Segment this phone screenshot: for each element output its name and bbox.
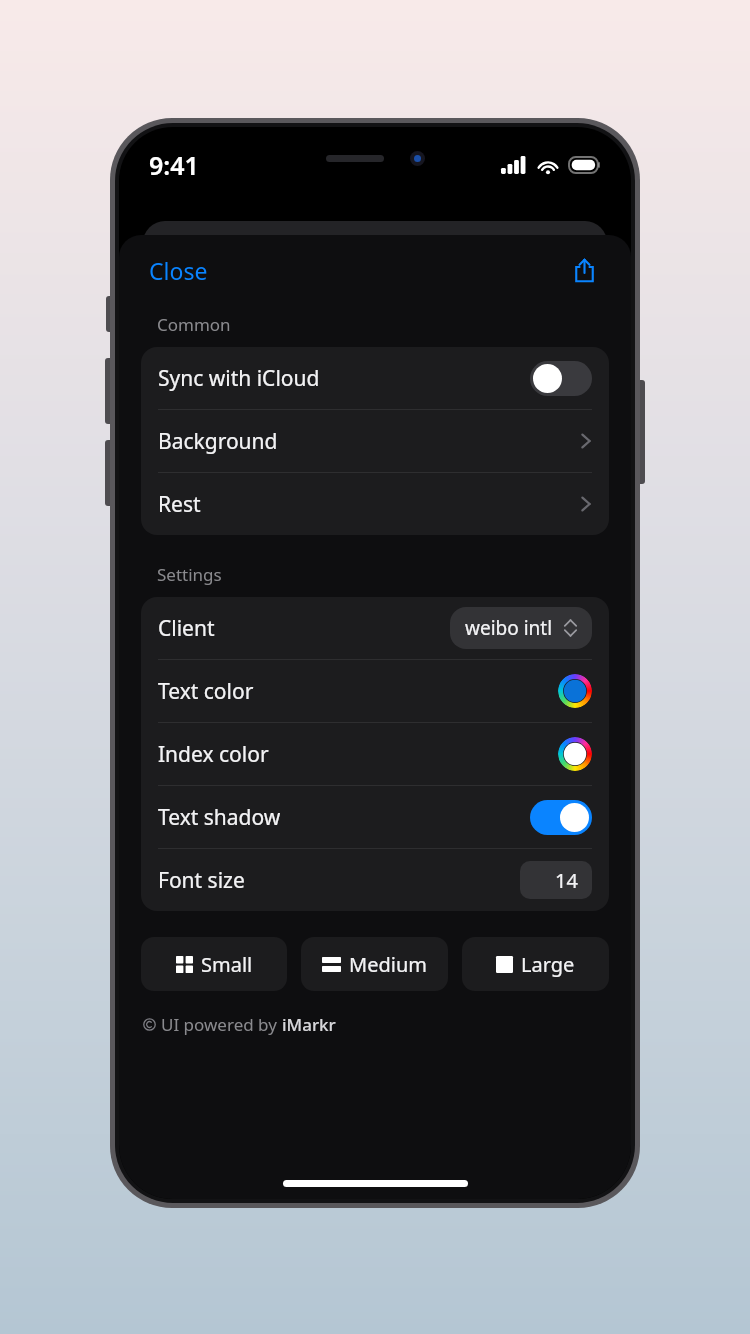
button[interactable]: Text color (141, 660, 609, 722)
staticText: 9:41 (149, 148, 199, 182)
staticText: Medium (349, 951, 427, 978)
staticText: UI powered by (161, 1013, 282, 1036)
staticText: Index color (158, 740, 269, 769)
button[interactable]: Medium (301, 937, 448, 991)
staticText: Settings (157, 563, 222, 586)
staticText: 14 (555, 867, 578, 894)
staticText: Common (157, 313, 231, 336)
staticText: Small (201, 951, 253, 978)
staticText: Text shadow (158, 803, 281, 832)
button[interactable]: Pick color (558, 737, 592, 771)
staticText: Rest (158, 490, 201, 519)
staticText: Close (149, 255, 208, 286)
button[interactable]: weibo intl (450, 607, 592, 649)
button[interactable]: Text shadow (141, 786, 609, 848)
staticText: Font size (158, 866, 245, 895)
staticText: Client (158, 614, 215, 643)
button[interactable] (530, 800, 592, 835)
staticText: Background (158, 427, 278, 456)
button[interactable]: Large (462, 937, 609, 991)
button[interactable]: Background (141, 410, 609, 472)
button[interactable]: Small (141, 937, 287, 991)
button[interactable]: Share (563, 249, 605, 291)
button[interactable]: Pick color (558, 674, 592, 708)
button[interactable]: Rest (141, 473, 609, 535)
staticText: Large (521, 951, 575, 978)
staticText: iMarkr (282, 1013, 336, 1036)
button[interactable]: 14 (520, 861, 592, 899)
staticText: Sync with iCloud (158, 364, 320, 393)
button[interactable]: Font size (141, 849, 609, 911)
button[interactable]: Index color (141, 723, 609, 785)
button[interactable]: Client (141, 597, 609, 659)
staticText: weibo intl (465, 615, 553, 641)
button[interactable] (530, 361, 592, 396)
staticText: Text color (158, 677, 254, 706)
button[interactable]: Close (145, 249, 212, 292)
button[interactable]: Sync with iCloud (141, 347, 609, 409)
